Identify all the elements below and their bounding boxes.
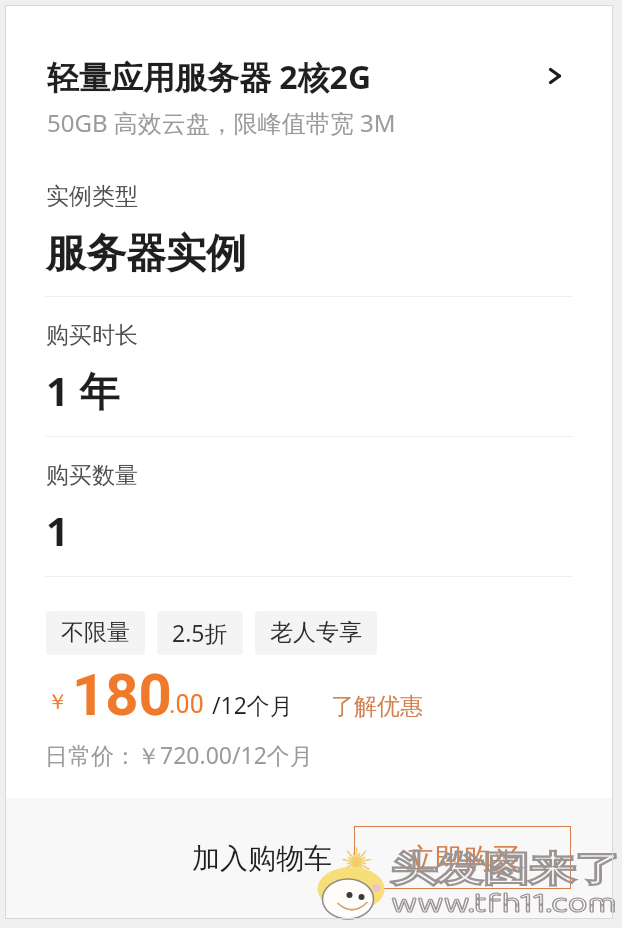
staticText: 购买数量 xyxy=(46,461,138,490)
staticText: 2.5折 xyxy=(172,617,228,648)
staticText: /12个月 xyxy=(212,689,293,720)
button[interactable]: 立即购买 xyxy=(354,826,571,889)
staticText: 加入购物车 xyxy=(192,841,332,876)
staticText: 立即购买 xyxy=(407,841,519,876)
staticText: 1 xyxy=(46,503,69,557)
staticText: ￥ xyxy=(47,689,68,715)
button[interactable]: 不限量 xyxy=(46,611,145,655)
staticText: 不限量 xyxy=(61,618,130,647)
button[interactable]: 了解优惠 xyxy=(331,692,423,721)
staticText: 老人专享 xyxy=(270,618,362,647)
staticText: 180 xyxy=(72,661,172,723)
other: 查看配置详情 xyxy=(536,57,574,95)
staticText: 轻量应用服务器 2核2G xyxy=(47,55,372,99)
button[interactable]: 老人专享 xyxy=(255,611,377,655)
staticText: 50GB 高效云盘，限峰值带宽 3M xyxy=(47,106,396,139)
staticText: 购买时长 xyxy=(46,321,138,350)
staticText: 日常价：￥720.00/12个月 xyxy=(45,739,313,770)
button[interactable]: 轻量应用服务器 2核2G xyxy=(5,45,613,150)
staticText: 服务器实例 xyxy=(46,228,246,278)
staticText: 1 年 xyxy=(46,363,120,418)
staticText: .00 xyxy=(169,690,204,719)
staticText: 实例类型 xyxy=(46,182,138,211)
button[interactable]: 2.5折 xyxy=(157,611,243,655)
button[interactable]: 加入购物车 xyxy=(150,798,374,919)
